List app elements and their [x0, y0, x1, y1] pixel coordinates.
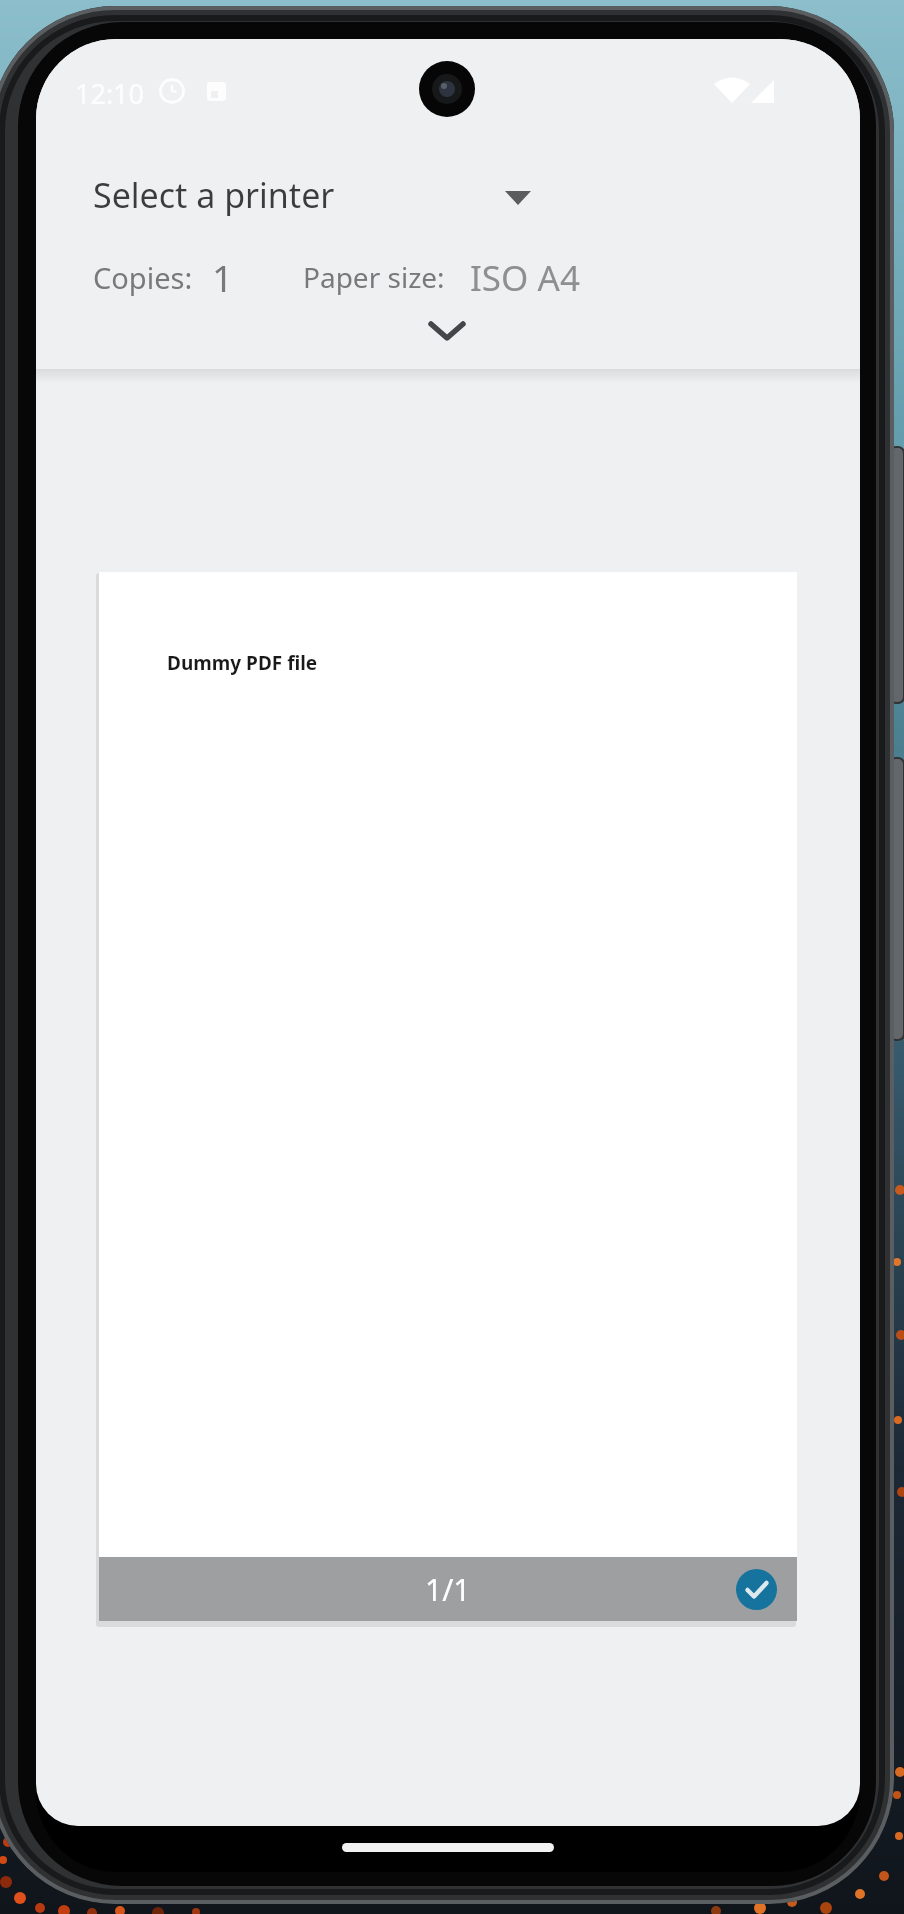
button[interactable] — [423, 311, 471, 351]
button[interactable]: Dummy PDF file — [99, 572, 797, 1621]
staticText: Dummy PDF file — [167, 650, 318, 676]
staticText: 1/1 — [425, 1569, 471, 1610]
button[interactable]: Paper size: — [286, 254, 596, 314]
staticText: 1 — [212, 252, 234, 302]
button[interactable]: Copies: — [76, 254, 256, 314]
button[interactable] — [736, 1569, 777, 1610]
staticText: Paper size: — [303, 258, 445, 296]
staticText: Copies: — [93, 258, 193, 297]
staticText: ISO A4 — [470, 254, 580, 302]
button[interactable]: Select a printer — [76, 169, 586, 239]
staticText: Select a printer — [93, 172, 335, 218]
staticText: 12:10 — [75, 75, 145, 112]
